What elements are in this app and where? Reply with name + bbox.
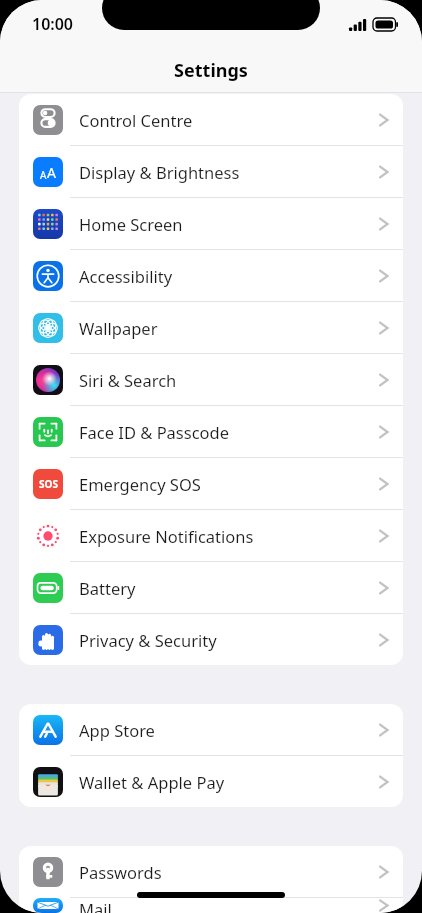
button[interactable]: Wallpaper bbox=[19, 302, 403, 353]
button[interactable]: Face ID & Passcode bbox=[19, 406, 403, 457]
staticText: Display & Brightness bbox=[79, 161, 379, 183]
staticText: Wallet & Apple Pay bbox=[79, 771, 379, 793]
staticText: Accessibility bbox=[79, 265, 379, 287]
staticText: Control Centre bbox=[79, 109, 379, 131]
button[interactable]: A bbox=[19, 146, 403, 197]
button[interactable]: Passwords bbox=[19, 846, 403, 897]
staticText: A bbox=[47, 163, 56, 182]
staticText: Privacy & Security bbox=[79, 629, 379, 651]
button[interactable]: Control Centre bbox=[19, 94, 403, 145]
staticText: Mail bbox=[79, 898, 379, 913]
staticText: Battery bbox=[79, 577, 379, 599]
button[interactable]: Privacy & Security bbox=[19, 614, 403, 665]
staticText: Exposure Notifications bbox=[79, 525, 379, 547]
staticText: SOS bbox=[39, 477, 58, 491]
staticText: App Store bbox=[79, 719, 379, 741]
staticText: Face ID & Passcode bbox=[79, 421, 379, 443]
staticText: Settings bbox=[174, 58, 248, 83]
button[interactable]: Mail bbox=[19, 898, 403, 913]
staticText: Wallpaper bbox=[79, 317, 379, 339]
staticText: 10:00 bbox=[32, 13, 74, 35]
button[interactable]: Accessibility bbox=[19, 250, 403, 301]
button[interactable]: App Store bbox=[19, 704, 403, 755]
staticText: Passwords bbox=[79, 861, 379, 883]
button[interactable]: Battery bbox=[19, 562, 403, 613]
button[interactable]: SOS bbox=[19, 458, 403, 509]
staticText: Siri & Search bbox=[79, 369, 379, 391]
staticText: Home Screen bbox=[79, 213, 379, 235]
staticText: Emergency SOS bbox=[79, 473, 379, 495]
button[interactable]: Home Screen bbox=[19, 198, 403, 249]
staticText: A bbox=[40, 168, 47, 182]
button[interactable]: Siri & Search bbox=[19, 354, 403, 405]
button[interactable]: Exposure Notifications bbox=[19, 510, 403, 561]
button[interactable]: Wallet & Apple Pay bbox=[19, 756, 403, 807]
